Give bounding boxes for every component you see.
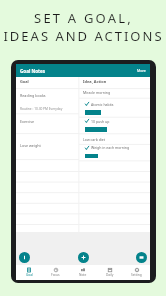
staticText: Focus	[51, 273, 60, 277]
staticText: More	[137, 68, 146, 73]
staticText: Weigh in each morning	[91, 145, 130, 150]
staticText: Note	[79, 273, 87, 277]
staticText: Atomic habits	[91, 102, 114, 107]
staticText: Low carb diet	[83, 137, 105, 142]
staticText: Lose weight	[20, 143, 41, 148]
staticText: Reading books	[20, 93, 46, 98]
button[interactable]: Goal	[16, 268, 42, 277]
button[interactable]: Setting	[123, 268, 150, 277]
button[interactable]: Note	[69, 268, 96, 277]
staticText: Idea, Action	[83, 79, 107, 84]
staticText: Exercise	[20, 119, 35, 124]
staticText: Goal Notes	[20, 68, 46, 74]
button[interactable]: Open notes	[136, 252, 147, 263]
staticText: IDEAS AND ACTIONS	[3, 27, 164, 45]
button[interactable]: Focus	[42, 268, 69, 277]
staticText: Goal	[20, 79, 29, 84]
button[interactable]: Daily	[96, 268, 123, 277]
staticText: Routine : 10.30 PM Everyday	[20, 107, 63, 111]
staticText: Daily	[106, 273, 114, 277]
staticText: Miracle morning	[83, 90, 111, 95]
button[interactable]: Add note	[78, 252, 89, 263]
staticText: Setting	[131, 273, 142, 277]
staticText: Goal	[26, 273, 33, 277]
staticText: 10 push up	[91, 119, 110, 124]
staticText: SET A GOAL,	[34, 9, 133, 27]
button[interactable]: Edit goal	[19, 252, 30, 263]
